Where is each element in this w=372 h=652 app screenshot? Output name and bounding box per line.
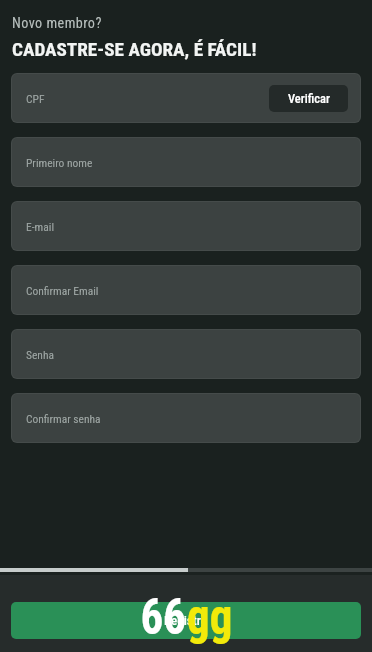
staticText: CADASTRE-SE AGORA, É FÁCIL! bbox=[12, 38, 257, 61]
staticText: E-mail bbox=[26, 220, 55, 233]
button[interactable]: E-mail bbox=[12, 202, 360, 250]
button[interactable]: Senha bbox=[12, 330, 360, 378]
button[interactable]: Confirmar senha bbox=[12, 394, 360, 442]
staticText: Senha bbox=[26, 348, 54, 361]
staticText: Confirmar senha bbox=[26, 412, 101, 425]
staticText: Primeiro nome bbox=[26, 156, 93, 169]
button[interactable]: Registro bbox=[11, 602, 361, 639]
staticText: 66 bbox=[140, 588, 187, 646]
button[interactable]: Confirmar Email bbox=[12, 266, 360, 314]
button[interactable]: Verificar bbox=[269, 85, 348, 112]
staticText: CPF bbox=[26, 92, 45, 105]
staticText: gg bbox=[187, 588, 232, 646]
staticText: Novo membro? bbox=[12, 15, 102, 32]
staticText: Verificar bbox=[288, 91, 330, 106]
staticText: Confirmar Email bbox=[26, 284, 99, 297]
staticText: Registro bbox=[164, 613, 208, 628]
button[interactable]: CPF bbox=[12, 74, 360, 122]
button[interactable]: Primeiro nome bbox=[12, 138, 360, 186]
